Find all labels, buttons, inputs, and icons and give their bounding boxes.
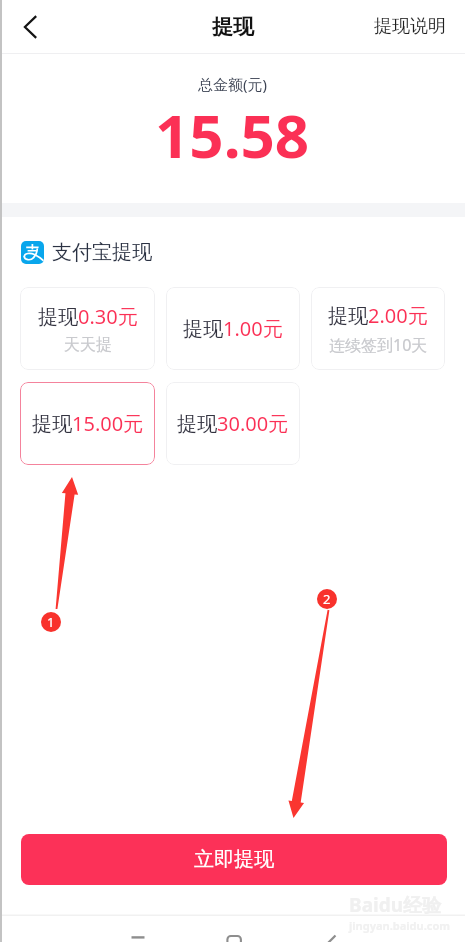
button[interactable]: Home [210, 916, 258, 942]
staticText: 提现1.00元 [183, 315, 283, 342]
button[interactable]: 提现说明 [355, 3, 465, 50]
staticText: 提现15.00元 [32, 410, 144, 437]
staticText: 提现说明 [374, 15, 446, 38]
staticText: 立即提现 [194, 847, 274, 872]
staticText: 1 [47, 613, 55, 631]
staticText: 支付宝提现 [52, 240, 152, 265]
staticText: 天天提 [64, 335, 112, 355]
button[interactable]: 提现0.30元 [20, 287, 155, 370]
staticText: 提现 [212, 14, 254, 40]
button[interactable]: 提现1.00元 [166, 287, 300, 370]
staticText: 2 [323, 590, 331, 608]
button[interactable]: 提现30.00元 [166, 382, 300, 465]
button[interactable]: Back [307, 916, 355, 942]
button[interactable]: 提现15.00元 [20, 382, 155, 465]
staticText: 15.58 [155, 94, 310, 176]
staticText: 连续签到10天 [329, 334, 428, 356]
button[interactable]: 立即提现 [21, 834, 447, 885]
staticText: jingyan.baidu.com [349, 918, 451, 933]
staticText: 提现2.00元 [328, 302, 428, 329]
button[interactable]: Back [8, 5, 52, 49]
staticText: 提现30.00元 [177, 410, 289, 437]
button[interactable]: Recent apps [114, 916, 162, 942]
staticText: 提现0.30元 [38, 303, 138, 330]
staticText: 总金额(元) [198, 74, 268, 94]
button[interactable]: 提现2.00元 [311, 287, 445, 370]
staticText: Baidu经验 [349, 892, 442, 918]
